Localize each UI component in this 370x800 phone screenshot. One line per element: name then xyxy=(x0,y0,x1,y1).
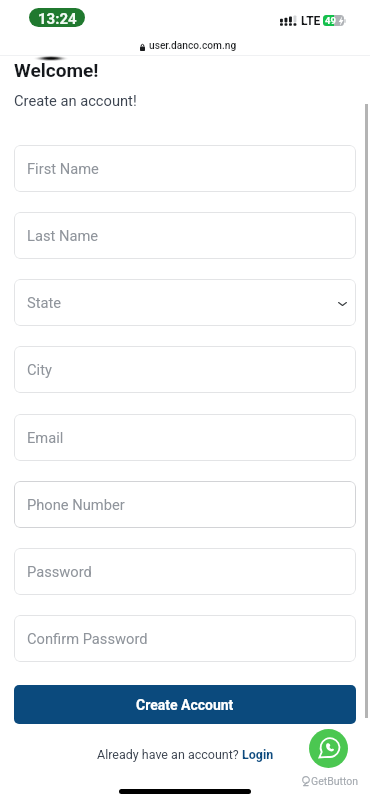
button[interactable]: City xyxy=(14,346,356,393)
button[interactable]: Phone Number xyxy=(14,481,356,528)
staticText: Already have an account? xyxy=(97,747,242,762)
staticText: First Name xyxy=(27,160,99,177)
button[interactable]: Password xyxy=(14,548,356,595)
staticText: LTE xyxy=(301,14,321,28)
staticText: GetButton xyxy=(311,775,359,787)
staticText: Confirm Password xyxy=(27,630,148,647)
button[interactable]: Last Name xyxy=(14,212,356,259)
staticText: 13:24 xyxy=(38,10,77,27)
staticText: Email xyxy=(27,429,64,446)
staticText: user.danco.com.ng xyxy=(149,40,237,52)
staticText: Last Name xyxy=(27,227,99,244)
button[interactable]: Login xyxy=(242,747,274,762)
button[interactable]: Chat on WhatsApp xyxy=(309,729,348,768)
staticText: Create an account! xyxy=(14,92,137,109)
staticText: Welcome! xyxy=(14,59,99,81)
staticText: Password xyxy=(27,563,92,580)
button[interactable]: Create Account xyxy=(14,685,356,724)
staticText: City xyxy=(27,361,52,378)
staticText: Phone Number xyxy=(27,496,125,513)
button[interactable]: State xyxy=(14,279,356,326)
button[interactable]: Confirm Password xyxy=(14,615,356,662)
staticText: Login xyxy=(242,747,274,762)
staticText: Create Account xyxy=(136,697,234,713)
button[interactable]: Email xyxy=(14,414,356,461)
staticText: State xyxy=(27,294,62,311)
button[interactable]: First Name xyxy=(14,145,356,192)
staticText: 49 xyxy=(325,15,336,26)
